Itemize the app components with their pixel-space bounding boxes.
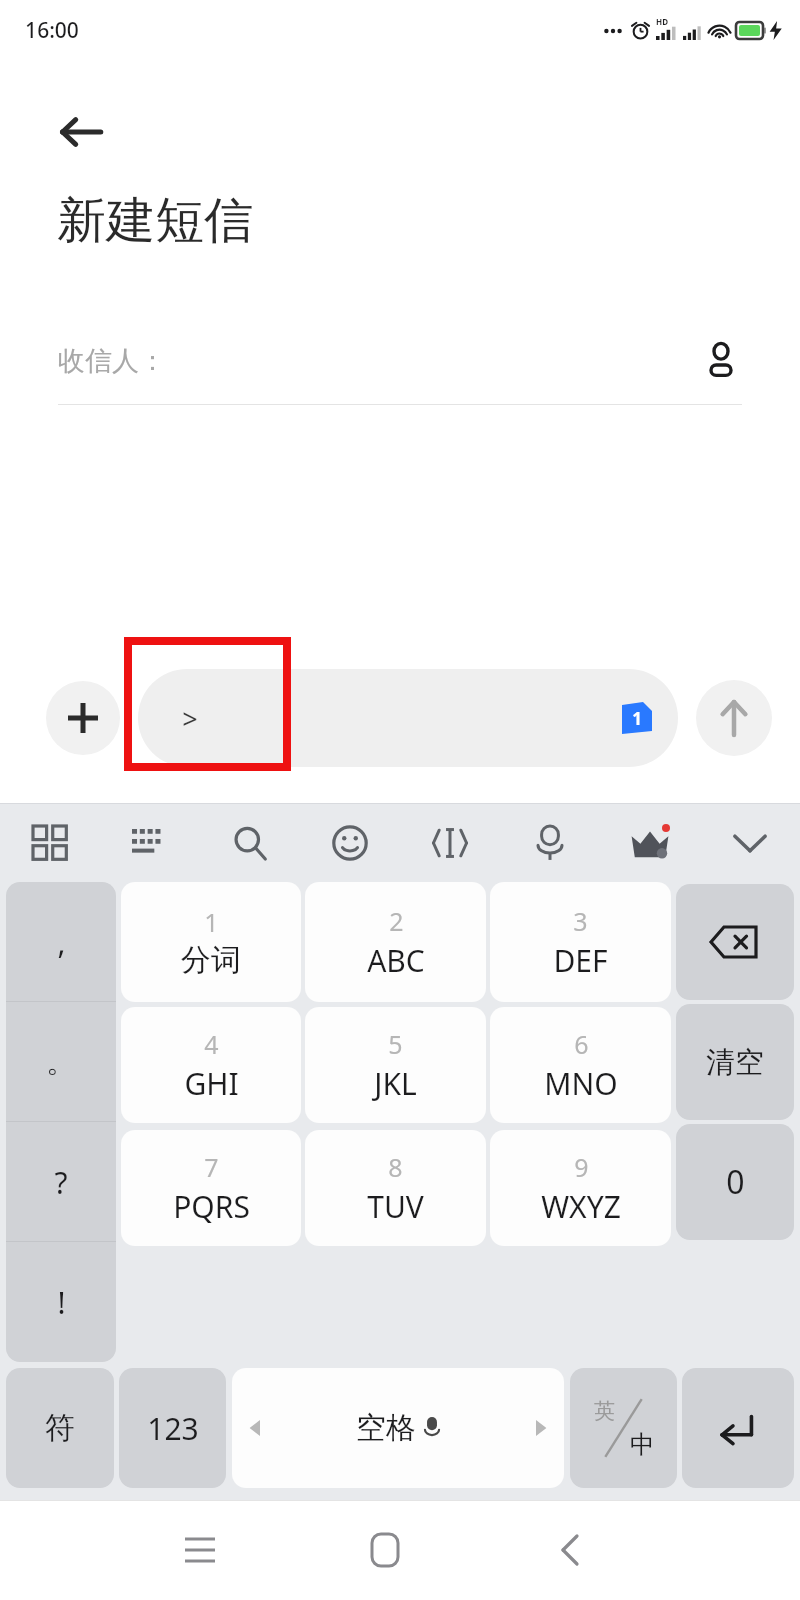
button[interactable]: 9 bbox=[490, 1130, 671, 1246]
button[interactable]: Back bbox=[45, 96, 117, 168]
staticText: > bbox=[182, 700, 198, 737]
staticText: 8 bbox=[388, 1150, 403, 1184]
button[interactable]: Search bbox=[200, 804, 300, 882]
button[interactable]: 8 bbox=[305, 1130, 486, 1246]
button[interactable]: 收信人： bbox=[58, 318, 750, 404]
staticText: 123 bbox=[147, 1408, 199, 1449]
staticText: 符 bbox=[45, 1409, 75, 1447]
button[interactable]: 3 bbox=[490, 882, 671, 1002]
button[interactable]: 空格 bbox=[232, 1368, 564, 1488]
button[interactable]: Enter bbox=[682, 1368, 794, 1488]
button[interactable]: > bbox=[138, 669, 678, 767]
button[interactable]: Home bbox=[345, 1510, 425, 1590]
staticText: 6 bbox=[574, 1027, 589, 1061]
button[interactable]: 符 bbox=[6, 1368, 114, 1488]
staticText: WXYZ bbox=[541, 1186, 621, 1227]
button[interactable]: Edit cursor bbox=[400, 804, 500, 882]
staticText: 0 bbox=[726, 1160, 745, 1204]
button[interactable]: , bbox=[6, 882, 116, 1002]
button[interactable]: Panels bbox=[0, 804, 100, 882]
button[interactable]: Voice input bbox=[500, 804, 600, 882]
staticText: DEF bbox=[553, 940, 608, 981]
staticText: 新建短信 bbox=[57, 190, 253, 252]
staticText: TUV bbox=[367, 1186, 424, 1227]
button[interactable]: 0 bbox=[676, 1124, 794, 1240]
button[interactable]: 2 bbox=[305, 882, 486, 1002]
staticText: 2 bbox=[389, 904, 404, 938]
button[interactable]: ? bbox=[6, 1122, 116, 1242]
staticText: 7 bbox=[204, 1150, 219, 1184]
button[interactable]: 。 bbox=[6, 1002, 116, 1122]
button[interactable]: Add attachment bbox=[46, 681, 120, 755]
button[interactable]: Send bbox=[696, 680, 772, 756]
staticText: PQRS bbox=[173, 1186, 250, 1227]
button[interactable]: 6 bbox=[490, 1007, 671, 1123]
staticText: MNO bbox=[544, 1063, 618, 1104]
staticText: 清空 bbox=[706, 1044, 764, 1081]
button[interactable]: Choose contact bbox=[692, 332, 750, 390]
staticText: 分词 bbox=[181, 941, 241, 979]
button[interactable]: 123 bbox=[119, 1368, 226, 1488]
button[interactable]: Hide keyboard bbox=[700, 804, 800, 882]
staticText: 9 bbox=[574, 1150, 589, 1184]
staticText: ABC bbox=[367, 940, 425, 981]
button[interactable]: Emoji bbox=[300, 804, 400, 882]
button[interactable]: Keyboard bbox=[100, 804, 200, 882]
staticText: 英 bbox=[594, 1398, 615, 1424]
staticText: 1 bbox=[204, 905, 219, 939]
button[interactable]: ! bbox=[6, 1242, 116, 1362]
button[interactable]: Recent apps bbox=[160, 1510, 240, 1590]
button[interactable]: 5 bbox=[305, 1007, 486, 1123]
staticText: 1 bbox=[632, 707, 642, 730]
staticText: JKL bbox=[374, 1063, 417, 1104]
button[interactable]: Switch English Chinese bbox=[570, 1368, 677, 1488]
button[interactable]: Premium bbox=[600, 804, 700, 882]
staticText: 。 bbox=[46, 1043, 76, 1081]
staticText: 4 bbox=[204, 1027, 219, 1061]
staticText: , bbox=[57, 922, 66, 963]
staticText: 空格 bbox=[356, 1409, 416, 1447]
button[interactable]: 清空 bbox=[676, 1004, 794, 1120]
staticText: HD bbox=[656, 16, 668, 27]
staticText: 16:00 bbox=[25, 16, 79, 45]
staticText: 3 bbox=[573, 904, 588, 938]
staticText: 5 bbox=[388, 1027, 403, 1061]
staticText: 中 bbox=[630, 1429, 655, 1460]
button[interactable]: 7 bbox=[121, 1130, 301, 1246]
button[interactable]: Back bbox=[530, 1510, 610, 1590]
staticText: ! bbox=[57, 1282, 66, 1323]
button[interactable]: 1 bbox=[121, 882, 301, 1002]
staticText: GHI bbox=[184, 1063, 239, 1104]
staticText: 收信人： bbox=[58, 344, 166, 378]
staticText: ? bbox=[54, 1162, 68, 1203]
button[interactable]: Delete bbox=[676, 884, 794, 1000]
button[interactable]: 4 bbox=[121, 1007, 301, 1123]
